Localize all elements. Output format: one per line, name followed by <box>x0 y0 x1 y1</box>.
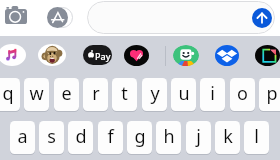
button[interactable]: y <box>142 78 167 111</box>
button[interactable]: h <box>156 121 181 154</box>
staticText: k <box>223 124 233 149</box>
button[interactable]: Apple Pay <box>83 45 112 65</box>
staticText: e <box>61 81 72 106</box>
button[interactable]: j <box>186 121 211 154</box>
button[interactable]: s <box>39 121 64 154</box>
staticText: h <box>163 124 175 149</box>
staticText: q <box>2 81 14 106</box>
staticText: p <box>266 81 278 106</box>
button[interactable]: a <box>10 121 35 154</box>
button[interactable]: g <box>127 121 152 154</box>
staticText: j <box>196 124 201 149</box>
staticText: r <box>92 81 100 106</box>
button[interactable]: Digital Touch <box>124 45 149 66</box>
button[interactable]: App <box>255 45 280 66</box>
button[interactable]: i <box>200 78 225 111</box>
button[interactable]: Dropbox <box>215 45 239 66</box>
button[interactable]: d <box>68 121 93 154</box>
staticText: f <box>107 124 114 149</box>
button[interactable]: u <box>171 78 196 111</box>
button[interactable]: p <box>259 78 280 111</box>
button[interactable]: Memoji <box>38 44 66 66</box>
staticText: a <box>17 124 28 149</box>
staticText: y <box>150 81 160 106</box>
staticText: t <box>121 81 128 106</box>
button[interactable]: l <box>244 121 269 154</box>
staticText: i <box>210 81 215 106</box>
button[interactable]: Camera <box>5 6 27 24</box>
button[interactable]: o <box>230 78 255 111</box>
staticText: u <box>178 81 190 106</box>
button[interactable]: Bitmoji <box>173 45 199 66</box>
button[interactable]: w <box>24 78 49 111</box>
staticText: l <box>254 124 259 149</box>
button[interactable]: e <box>54 78 79 111</box>
button[interactable]: App Store <box>47 7 68 28</box>
button[interactable]: f <box>98 121 123 154</box>
staticText: o <box>237 81 248 106</box>
button[interactable]: q <box>0 78 20 111</box>
button[interactable]: Send <box>252 8 272 28</box>
staticText: w <box>29 81 44 106</box>
button[interactable]: t <box>112 78 137 111</box>
button[interactable]: k <box>215 121 240 154</box>
staticText: s <box>47 124 56 149</box>
button[interactable]: r <box>83 78 108 111</box>
staticText: Pay <box>95 50 115 62</box>
staticText: d <box>75 124 87 149</box>
button[interactable] <box>87 1 275 34</box>
button[interactable]: Music <box>0 44 26 66</box>
staticText: g <box>134 124 146 149</box>
